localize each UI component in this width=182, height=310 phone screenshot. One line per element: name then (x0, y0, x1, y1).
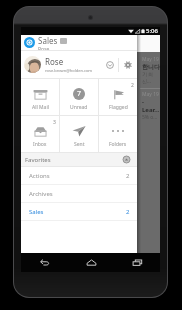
staticText: 5:06 (146, 27, 158, 35)
button[interactable]: Favorites (21, 153, 137, 166)
button[interactable]: Flagged (99, 79, 137, 115)
staticText: Sales (38, 35, 58, 46)
staticText: Rose (38, 46, 50, 50)
button[interactable]: Archives (21, 185, 137, 202)
staticText: 2 (126, 208, 130, 216)
button[interactable]: Mark read (101, 51, 118, 78)
staticText: 2 (126, 172, 130, 180)
staticText: 5% o... (142, 114, 158, 121)
button[interactable]: Settings (119, 51, 137, 78)
staticText: Favorites (25, 156, 51, 164)
button[interactable]: Actions (21, 167, 137, 184)
button[interactable]: 7 (60, 79, 98, 115)
button[interactable]: Recent apps (114, 253, 160, 272)
staticText: 한니다 (142, 63, 160, 71)
staticText: rose.brown@holden.com (45, 68, 93, 73)
button[interactable]: Sales (21, 203, 137, 220)
staticText: Inbox (33, 141, 47, 148)
staticText: Rose (45, 56, 64, 67)
staticText: Actions (29, 172, 50, 180)
staticText: Unread (70, 104, 88, 111)
button[interactable]: Back (21, 253, 68, 272)
staticText: May 19 (142, 91, 159, 98)
staticText: 2 (131, 82, 134, 89)
button[interactable]: All Mail (21, 79, 59, 115)
button[interactable]: Home (68, 253, 114, 272)
button[interactable]: Sales (21, 35, 137, 50)
staticText: Sent (74, 141, 85, 148)
button[interactable]: Rose (21, 51, 137, 78)
staticText: Archives (29, 190, 53, 198)
staticText: Folders (109, 141, 127, 148)
staticText: All Mail (32, 104, 49, 111)
staticText: 7 (77, 89, 82, 99)
staticText: 3 (53, 119, 56, 126)
staticText: 기 최신... (142, 71, 160, 85)
staticText: May 19 (142, 56, 159, 63)
staticText: - Lear... (142, 98, 160, 114)
button[interactable]: Inbox (21, 116, 59, 152)
staticText: Flagged (109, 104, 128, 111)
button[interactable]: Sent (60, 116, 98, 152)
staticText: Sales (29, 208, 44, 216)
button[interactable]: Folders (99, 116, 137, 152)
